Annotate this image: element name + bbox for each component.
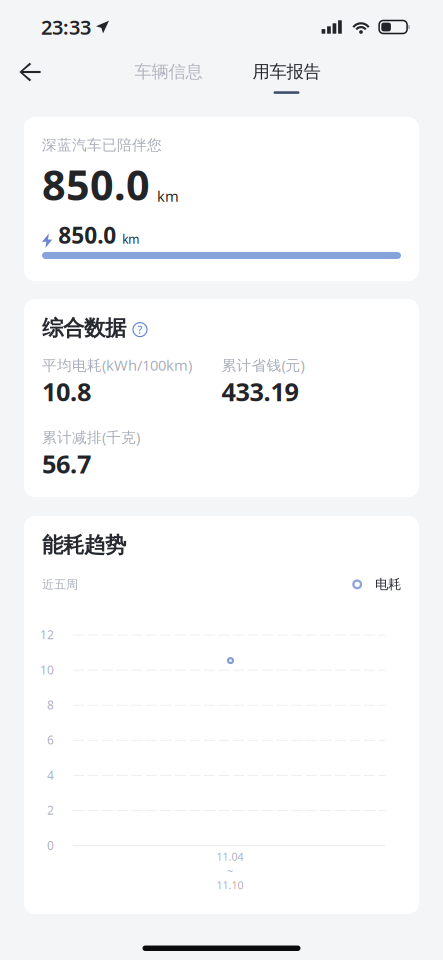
staticText: ~ bbox=[227, 864, 233, 878]
staticText: 电耗 bbox=[375, 576, 401, 593]
staticText: 23:33 bbox=[41, 14, 91, 40]
staticText: 850.0 bbox=[42, 157, 150, 212]
staticText: 累计减排(千克) bbox=[42, 427, 140, 447]
staticText: km bbox=[122, 231, 139, 247]
staticText: 6 bbox=[47, 732, 54, 748]
button[interactable]: Info bbox=[133, 320, 147, 337]
staticText: 0 bbox=[47, 837, 54, 853]
staticText: 近五周 bbox=[42, 577, 78, 592]
staticText: 平均电耗(kWh/100km) bbox=[42, 355, 192, 375]
staticText: 用车报告 bbox=[252, 61, 320, 82]
staticText: 850.0 bbox=[58, 220, 116, 250]
staticText: 10.8 bbox=[42, 375, 91, 408]
staticText: 12 bbox=[40, 627, 54, 643]
staticText: 深蓝汽车已陪伴您 bbox=[42, 136, 162, 154]
staticText: 11.04 bbox=[216, 850, 243, 864]
staticText: 433.19 bbox=[221, 375, 298, 408]
staticText: 车辆信息 bbox=[134, 61, 202, 82]
staticText: 11.10 bbox=[216, 878, 243, 892]
staticText: 56.7 bbox=[42, 447, 91, 480]
staticText: 8 bbox=[47, 697, 54, 713]
staticText: 能耗趋势 bbox=[42, 532, 126, 558]
staticText: km bbox=[157, 186, 179, 206]
staticText: 2 bbox=[47, 802, 54, 818]
button[interactable]: 用车报告 bbox=[236, 61, 336, 95]
button[interactable]: 车辆信息 bbox=[118, 61, 218, 95]
staticText: 综合数据 bbox=[42, 315, 126, 341]
staticText: 累计省钱(元) bbox=[221, 355, 304, 375]
staticText: 10 bbox=[40, 662, 54, 678]
staticText: ? bbox=[137, 322, 142, 337]
button[interactable]: Back bbox=[0, 54, 58, 89]
staticText: 4 bbox=[47, 767, 54, 783]
